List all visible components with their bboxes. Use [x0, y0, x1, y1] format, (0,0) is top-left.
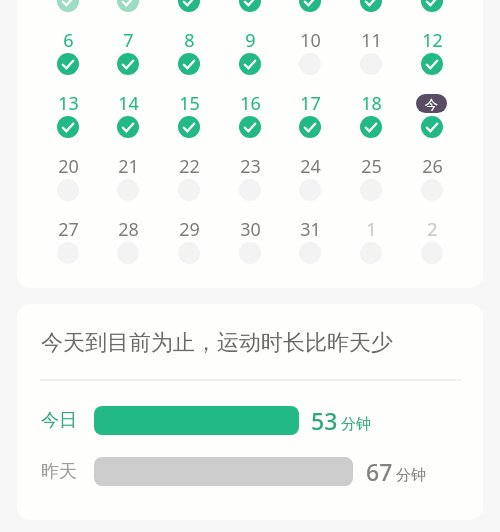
staticText: 23: [240, 154, 261, 179]
other: Today: [416, 94, 447, 113]
staticText: 22: [179, 154, 200, 179]
button[interactable]: [38, 214, 98, 269]
button[interactable]: [402, 151, 462, 206]
staticText: 6: [63, 28, 74, 53]
staticText: 2: [427, 217, 438, 242]
staticText: 29: [179, 217, 200, 242]
staticText: 17: [300, 91, 321, 116]
staticText: 11: [361, 28, 382, 53]
staticText: 13: [58, 91, 79, 116]
button[interactable]: [220, 151, 280, 206]
button[interactable]: [220, 88, 280, 143]
button[interactable]: [220, 25, 280, 80]
button[interactable]: [94, 457, 353, 486]
button[interactable]: [341, 214, 401, 269]
button[interactable]: [38, 88, 98, 143]
staticText: 21: [118, 154, 139, 179]
staticText: 今天到目前为止，运动时长比昨天少: [41, 329, 393, 357]
staticText: 分钟: [396, 466, 426, 485]
staticText: 53: [311, 405, 338, 436]
button[interactable]: [402, 214, 462, 269]
staticText: 今: [425, 96, 438, 112]
staticText: 10: [300, 28, 321, 53]
staticText: 12: [422, 28, 443, 53]
staticText: 67: [366, 456, 393, 487]
button[interactable]: [341, 0, 401, 17]
button[interactable]: [38, 0, 98, 17]
staticText: 24: [300, 154, 321, 179]
button[interactable]: [38, 151, 98, 206]
staticText: 30: [240, 217, 261, 242]
staticText: 分钟: [341, 415, 371, 434]
button[interactable]: [220, 214, 280, 269]
staticText: 20: [58, 154, 79, 179]
staticText: 15: [179, 91, 200, 116]
staticText: 28: [118, 217, 139, 242]
button[interactable]: [159, 214, 219, 269]
staticText: 8: [184, 28, 195, 53]
button[interactable]: [159, 151, 219, 206]
button[interactable]: [341, 151, 401, 206]
button[interactable]: [98, 151, 158, 206]
button[interactable]: [341, 25, 401, 80]
staticText: 18: [361, 91, 382, 116]
staticText: 7: [123, 28, 134, 53]
button[interactable]: [280, 25, 340, 80]
button[interactable]: [94, 406, 299, 435]
button[interactable]: [159, 88, 219, 143]
staticText: 14: [118, 91, 139, 116]
button[interactable]: [159, 25, 219, 80]
staticText: 9: [245, 28, 256, 53]
button[interactable]: [280, 88, 340, 143]
button[interactable]: [402, 0, 462, 17]
button[interactable]: [98, 88, 158, 143]
staticText: 25: [361, 154, 382, 179]
staticText: 16: [240, 91, 261, 116]
button[interactable]: [402, 25, 462, 80]
button[interactable]: [341, 88, 401, 143]
staticText: 今日: [41, 409, 77, 432]
button[interactable]: [280, 214, 340, 269]
button[interactable]: [280, 151, 340, 206]
button[interactable]: [280, 0, 340, 17]
button[interactable]: [98, 25, 158, 80]
staticText: 昨天: [41, 460, 77, 483]
staticText: 31: [300, 217, 321, 242]
staticText: 1: [366, 217, 377, 242]
button[interactable]: [98, 214, 158, 269]
button[interactable]: [159, 0, 219, 17]
staticText: 27: [58, 217, 79, 242]
button[interactable]: [220, 0, 280, 17]
button[interactable]: [38, 25, 98, 80]
button[interactable]: [402, 88, 462, 143]
staticText: 26: [422, 154, 443, 179]
button[interactable]: [98, 0, 158, 17]
